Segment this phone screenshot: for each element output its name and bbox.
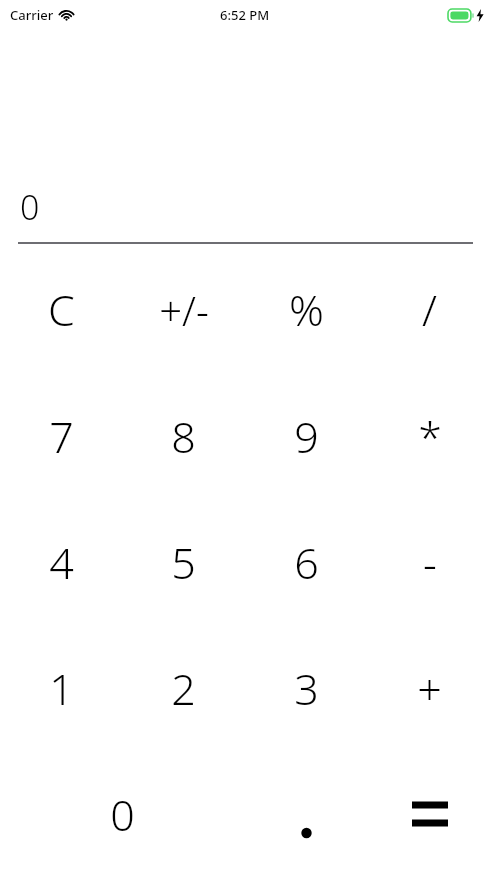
staticText: 2 [171, 659, 196, 718]
staticText: 1 [49, 659, 74, 718]
button[interactable]: 6 [245, 499, 368, 625]
button[interactable]: 9 [245, 373, 368, 499]
button[interactable]: 5 [122, 499, 245, 625]
staticText: 7 [49, 407, 74, 466]
button[interactable] [245, 751, 368, 877]
button[interactable]: % [245, 246, 368, 373]
staticText: * [418, 407, 442, 466]
button[interactable]: 2 [122, 625, 245, 751]
button[interactable]: C [0, 246, 122, 373]
button[interactable]: 1 [0, 625, 122, 751]
button[interactable]: 0 [0, 751, 245, 877]
staticText: 3 [294, 659, 319, 718]
staticText: Carrier [10, 6, 54, 24]
staticText: 4 [49, 533, 74, 592]
staticText: % [289, 280, 324, 339]
staticText: +/- [159, 283, 209, 337]
button[interactable]: - [368, 499, 491, 625]
button[interactable]: Equals [368, 751, 491, 877]
button[interactable]: 4 [0, 499, 122, 625]
staticText: 9 [294, 407, 319, 466]
staticText: 8 [171, 407, 196, 466]
staticText: 5 [171, 533, 196, 592]
staticText: 6:52 PM [220, 6, 270, 24]
staticText: 6 [294, 533, 319, 592]
staticText: - [423, 533, 437, 592]
staticText: C [48, 280, 75, 339]
button[interactable]: / [368, 246, 491, 373]
staticText: + [417, 659, 442, 718]
button[interactable]: + [368, 625, 491, 751]
button[interactable]: +/- [122, 246, 245, 373]
staticText: 0 [20, 184, 40, 230]
staticText: / [422, 280, 437, 339]
staticText: 0 [110, 785, 135, 844]
button[interactable]: * [368, 373, 491, 499]
button[interactable]: 3 [245, 625, 368, 751]
button[interactable]: 7 [0, 373, 122, 499]
button[interactable]: 8 [122, 373, 245, 499]
